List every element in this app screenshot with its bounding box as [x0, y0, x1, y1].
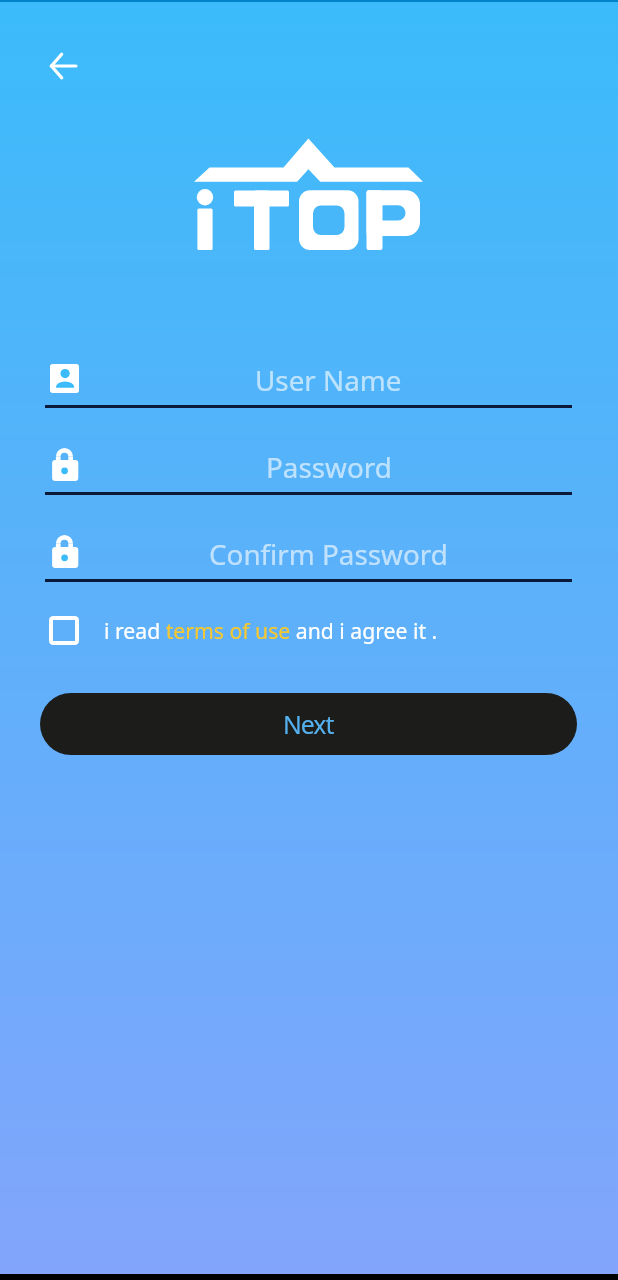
- button[interactable]: User Name: [45, 355, 572, 408]
- button[interactable]: Next: [40, 693, 577, 755]
- staticText: User Name: [255, 361, 402, 399]
- staticText: Confirm Password: [209, 535, 448, 573]
- staticText: i read terms of use and i agree it .: [104, 616, 438, 645]
- button[interactable]: Password: [45, 442, 572, 495]
- button[interactable]: Confirm Password: [45, 529, 572, 582]
- button[interactable]: Back: [40, 42, 86, 88]
- button[interactable]: i read terms of use and i agree it .: [49, 605, 438, 655]
- staticText: Next: [283, 707, 334, 741]
- staticText: Password: [266, 448, 392, 486]
